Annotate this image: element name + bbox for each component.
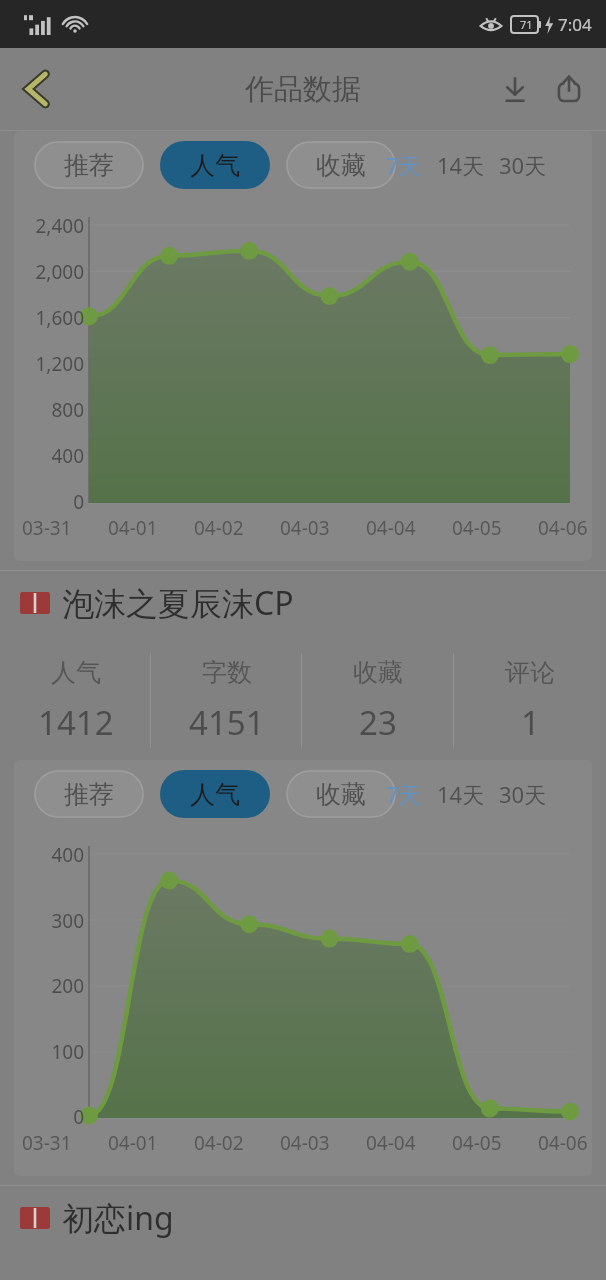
staticText: 04-01: [108, 515, 158, 541]
button[interactable]: 评论: [454, 641, 606, 760]
staticText: 1: [521, 700, 540, 745]
staticText: 71: [520, 17, 533, 32]
button[interactable]: 人气: [160, 770, 270, 818]
button[interactable]: 30天: [497, 775, 549, 813]
staticText: 04-04: [366, 515, 416, 541]
staticText: 800: [51, 397, 84, 423]
button[interactable]: Back: [8, 60, 66, 118]
staticText: 14天: [437, 150, 485, 180]
staticText: 30天: [499, 150, 547, 180]
staticText: 1412: [38, 700, 114, 745]
staticText: 推荐: [64, 150, 114, 181]
staticText: 2,400: [35, 213, 84, 239]
staticText: 7:04: [558, 13, 592, 36]
staticText: 04-01: [108, 1130, 158, 1156]
staticText: 收藏: [316, 150, 366, 181]
staticText: 04-02: [194, 515, 244, 541]
staticText: 04-03: [280, 1130, 330, 1156]
button[interactable]: 14天: [435, 146, 487, 184]
button[interactable]: 收藏: [286, 770, 396, 818]
staticText: 7天: [386, 779, 421, 809]
staticText: 04-05: [452, 1130, 502, 1156]
button[interactable]: 推荐: [34, 770, 144, 818]
staticText: 评论: [505, 657, 555, 688]
staticText: 30天: [499, 779, 547, 809]
staticText: 人气: [51, 657, 101, 688]
staticText: 04-02: [194, 1130, 244, 1156]
staticText: 作品数据: [245, 71, 361, 108]
staticText: 200: [51, 973, 84, 999]
staticText: 04-06: [538, 515, 588, 541]
button[interactable]: 14天: [435, 775, 487, 813]
staticText: 人气: [190, 779, 240, 810]
staticText: 4151: [189, 700, 265, 745]
button[interactable]: 初恋ing: [0, 1186, 606, 1250]
staticText: 400: [51, 842, 84, 868]
staticText: 100: [51, 1039, 84, 1065]
button[interactable]: 推荐: [34, 141, 144, 189]
staticText: 0: [73, 489, 84, 515]
staticText: 字数: [202, 657, 252, 688]
staticText: 泡沫之夏辰沫CP: [62, 581, 294, 625]
button[interactable]: Download: [488, 62, 542, 116]
staticText: 初恋ing: [62, 1196, 174, 1240]
staticText: 04-04: [366, 1130, 416, 1156]
button[interactable]: Share: [542, 62, 596, 116]
button[interactable]: 7天: [384, 146, 423, 184]
staticText: 1,200: [35, 351, 84, 377]
staticText: 0: [73, 1104, 84, 1130]
button[interactable]: 人气: [160, 141, 270, 189]
staticText: 2,000: [35, 259, 84, 285]
button[interactable]: 7天: [384, 775, 423, 813]
button[interactable]: 收藏: [302, 641, 454, 760]
staticText: 03-31: [22, 1130, 72, 1156]
staticText: 04-05: [452, 515, 502, 541]
staticText: 23: [359, 700, 397, 745]
button[interactable]: 字数: [151, 641, 302, 760]
button[interactable]: 人气: [0, 641, 151, 760]
staticText: 04-03: [280, 515, 330, 541]
staticText: 收藏: [316, 779, 366, 810]
staticText: 收藏: [353, 657, 403, 688]
button[interactable]: 泡沫之夏辰沫CP: [0, 571, 606, 635]
staticText: 400: [51, 443, 84, 469]
staticText: 7天: [386, 150, 421, 180]
staticText: 04-06: [538, 1130, 588, 1156]
staticText: 1,600: [35, 305, 84, 331]
staticText: 300: [51, 908, 84, 934]
button[interactable]: 收藏: [286, 141, 396, 189]
staticText: 人气: [190, 150, 240, 181]
staticText: 14天: [437, 779, 485, 809]
staticText: 推荐: [64, 779, 114, 810]
staticText: 03-31: [22, 515, 72, 541]
button[interactable]: 30天: [497, 146, 549, 184]
